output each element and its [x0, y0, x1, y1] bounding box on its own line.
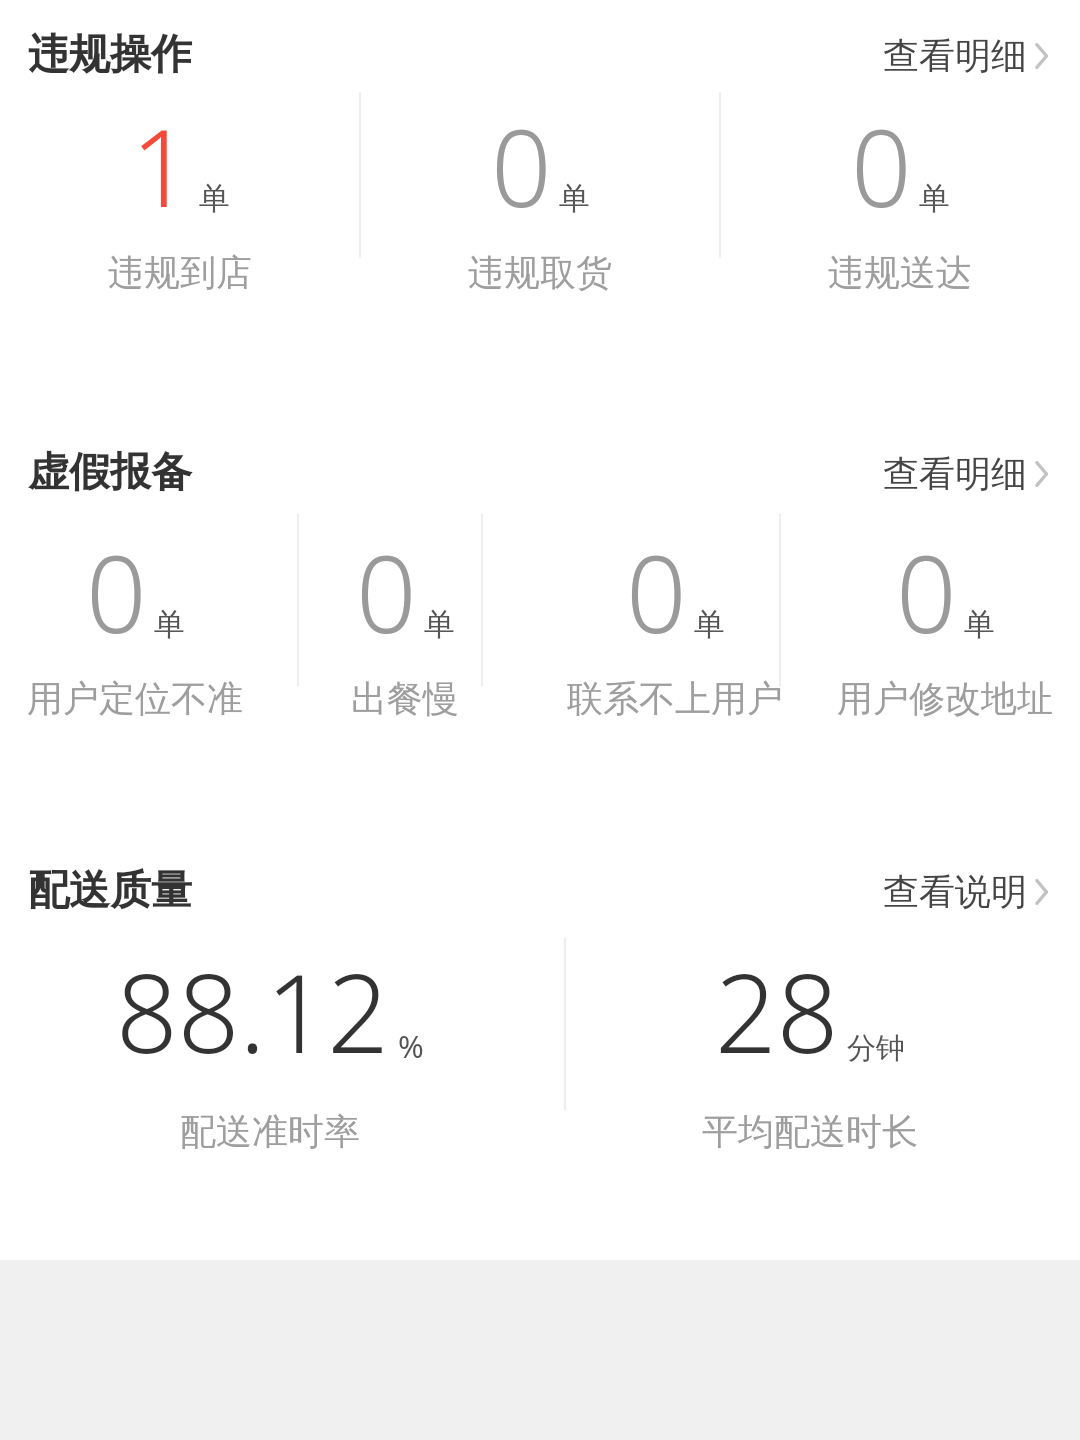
staticText: 违规送达	[828, 250, 972, 295]
button[interactable]: 0	[360, 92, 720, 374]
staticText: 单	[199, 179, 230, 218]
staticText: 平均配送时长	[702, 1109, 918, 1154]
button[interactable]: 1	[0, 92, 360, 374]
staticText: 虚假报备	[28, 447, 192, 499]
staticText: 1	[131, 94, 192, 238]
button[interactable]: 0	[270, 510, 540, 810]
staticText: 配送准时率	[180, 1109, 360, 1154]
button[interactable]: 查看明细	[877, 443, 1060, 504]
staticText: 联系不上用户	[567, 676, 783, 721]
staticText: 违规到店	[108, 250, 252, 295]
other: View details	[1032, 455, 1054, 493]
button[interactable]: 88.12	[0, 928, 540, 1238]
button[interactable]: 0	[540, 510, 810, 810]
other: View details	[1032, 37, 1054, 75]
button[interactable]: 0	[720, 92, 1080, 374]
button[interactable]: 查看说明	[877, 861, 1060, 922]
other: View details	[1032, 873, 1054, 911]
staticText: 查看说明	[883, 869, 1027, 914]
staticText: 配送质量	[28, 865, 192, 917]
staticText: 单	[154, 605, 185, 644]
staticText: 违规操作	[28, 29, 192, 81]
staticText: 单	[424, 605, 455, 644]
staticText: 分钟	[847, 1030, 905, 1067]
staticText: 88.12	[116, 938, 390, 1085]
staticText: 28	[715, 938, 839, 1085]
staticText: 0	[851, 94, 912, 238]
staticText: 单	[919, 179, 950, 218]
staticText: 查看明细	[883, 451, 1027, 496]
staticText: 用户修改地址	[837, 676, 1053, 721]
button[interactable]: 0	[810, 510, 1080, 810]
staticText: 单	[559, 179, 590, 218]
staticText: 违规取货	[468, 250, 612, 295]
staticText: 查看明细	[883, 33, 1027, 78]
staticText: 单	[694, 605, 725, 644]
staticText: 0	[86, 520, 147, 664]
staticText: %	[398, 1025, 424, 1067]
staticText: 0	[896, 520, 957, 664]
staticText: 0	[356, 520, 417, 664]
button[interactable]: 0	[0, 510, 270, 810]
staticText: 单	[964, 605, 995, 644]
staticText: 0	[491, 94, 552, 238]
button[interactable]: 查看明细	[877, 25, 1060, 86]
staticText: 0	[626, 520, 687, 664]
staticText: 出餐慢	[351, 676, 459, 721]
button[interactable]: 28	[540, 928, 1080, 1238]
staticText: 用户定位不准	[27, 676, 243, 721]
